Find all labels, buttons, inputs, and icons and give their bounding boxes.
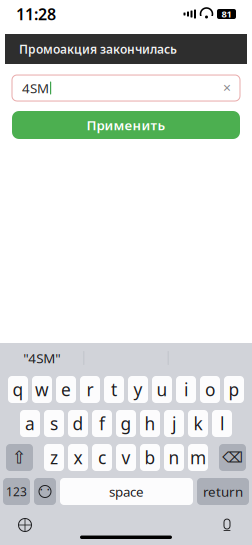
staticText: 11:28 (16, 3, 56, 25)
button[interactable]: Применить (12, 111, 240, 139)
staticText: u (156, 378, 167, 401)
button[interactable]: space (60, 478, 193, 505)
staticText: a (25, 412, 35, 435)
staticText: return (203, 483, 243, 500)
staticText: l (220, 412, 224, 435)
button[interactable]: b (140, 444, 160, 471)
staticText: 81 (221, 8, 231, 20)
staticText: space (109, 483, 144, 500)
button[interactable]: z (44, 444, 64, 471)
staticText: q (12, 378, 23, 401)
button[interactable]: x (68, 444, 88, 471)
staticText: i (184, 378, 188, 401)
staticText: m (190, 446, 206, 469)
button[interactable]: d (68, 410, 88, 437)
staticText: j (172, 412, 176, 435)
button[interactable]: Emoji (34, 478, 56, 505)
button[interactable]: q (8, 376, 28, 403)
staticText: d (72, 412, 83, 435)
button[interactable]: y (128, 376, 148, 403)
staticText: g (120, 412, 131, 435)
button[interactable]: Change keyboard (12, 512, 38, 538)
staticText: • • (40, 486, 50, 494)
staticText: 123 (6, 483, 27, 499)
button[interactable]: o (200, 376, 220, 403)
button[interactable]: v (116, 444, 136, 471)
staticText: ⇧ (12, 448, 27, 467)
staticText: h (144, 412, 155, 435)
staticText: v (121, 446, 130, 469)
staticText: z (50, 446, 58, 469)
button[interactable]: Clear text (218, 79, 236, 97)
button[interactable]: "4SM" (0, 345, 83, 371)
staticText: c (98, 446, 106, 469)
button[interactable]: f (92, 410, 112, 437)
button[interactable]: Numbers (3, 478, 30, 505)
button[interactable]: Dictate (214, 512, 240, 538)
button[interactable]: w (32, 376, 52, 403)
staticText: Применить (86, 116, 165, 134)
staticText: e (61, 378, 71, 401)
button[interactable]: r (80, 376, 100, 403)
button[interactable]: j (164, 410, 184, 437)
staticText: p (228, 378, 239, 401)
button[interactable]: u (152, 376, 172, 403)
button[interactable]: n (164, 444, 184, 471)
staticText: 4SM (22, 79, 49, 97)
staticText: w (35, 378, 49, 401)
button[interactable]: c (92, 444, 112, 471)
button[interactable]: e (56, 376, 76, 403)
staticText: k (193, 412, 202, 435)
button[interactable]: k (188, 410, 208, 437)
button[interactable]: p (224, 376, 244, 403)
staticText: s (50, 412, 58, 435)
staticText: y (133, 378, 142, 401)
staticText: ✕ (222, 82, 231, 94)
staticText: b (144, 446, 155, 469)
button[interactable]: m (188, 444, 208, 471)
staticText: ⌫ (222, 449, 243, 466)
button[interactable]: Shift (6, 444, 33, 471)
staticText: r (86, 378, 93, 401)
staticText: "4SM" (23, 349, 60, 367)
staticText: f (99, 412, 105, 435)
button[interactable]: return (197, 478, 249, 505)
button[interactable]: h (140, 410, 160, 437)
button[interactable]: i (176, 376, 196, 403)
staticText: x (73, 446, 82, 469)
staticText: Промоакция закончилась (19, 41, 177, 57)
button[interactable]: s (44, 410, 64, 437)
button[interactable]: t (104, 376, 124, 403)
button[interactable]: g (116, 410, 136, 437)
staticText: o (205, 378, 215, 401)
staticText: t (111, 378, 117, 401)
staticText: n (168, 446, 179, 469)
button[interactable]: Delete (219, 444, 246, 471)
button[interactable]: l (212, 410, 232, 437)
button[interactable]: a (20, 410, 40, 437)
